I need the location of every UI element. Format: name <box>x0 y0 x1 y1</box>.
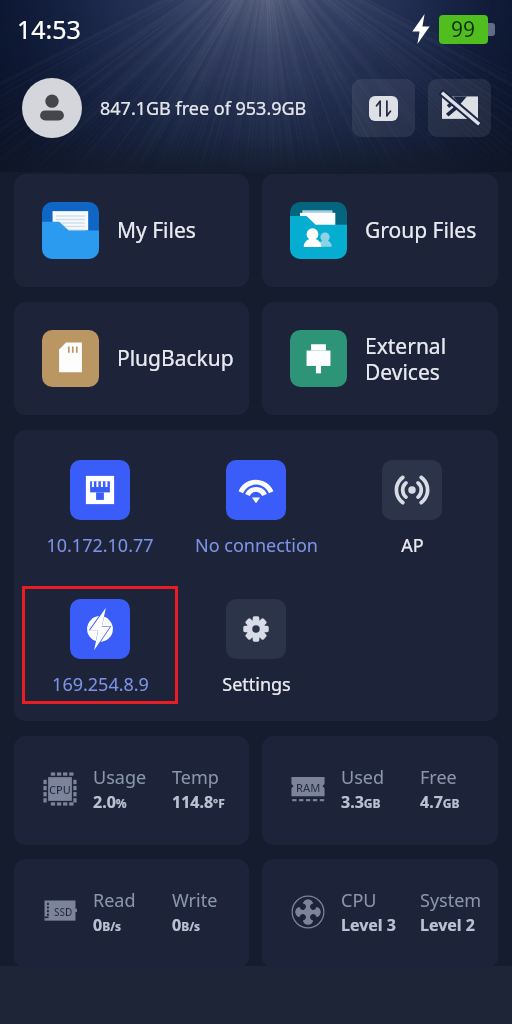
button[interactable]: 169.254.8.9 <box>22 599 178 697</box>
staticText: CPU <box>49 782 71 797</box>
staticText: Level 3 <box>341 914 396 936</box>
staticText: PlugBackup <box>117 344 234 373</box>
staticText: 3.3GB <box>341 791 381 813</box>
staticText: 169.254.8.9 <box>52 672 149 697</box>
button[interactable]: SSD <box>14 859 249 968</box>
staticText: Level 2 <box>420 914 475 936</box>
staticText: RAM <box>296 780 321 795</box>
staticText: Free <box>420 765 457 790</box>
staticText: SSD <box>54 905 73 919</box>
staticText: Temp <box>172 765 219 790</box>
button[interactable]: CPU <box>14 736 249 845</box>
staticText: 114.8°F <box>172 791 225 813</box>
staticText: Usage <box>93 765 147 790</box>
button[interactable]: Profile <box>22 78 82 138</box>
button[interactable]: Settings <box>178 599 334 697</box>
button[interactable]: Mute <box>428 79 491 137</box>
staticText: Write <box>172 888 218 913</box>
staticText: 4.7GB <box>420 791 460 813</box>
button[interactable]: PlugBackup <box>14 302 249 415</box>
button[interactable]: External Devices <box>262 302 498 415</box>
staticText: 0B/s <box>172 914 201 936</box>
staticText: 0B/s <box>93 914 122 936</box>
staticText: 10.172.10.77 <box>46 533 154 558</box>
staticText: External Devices <box>365 332 447 386</box>
staticText: No connection <box>195 533 318 558</box>
button[interactable]: Transfer <box>352 79 415 137</box>
button[interactable]: AP <box>334 460 490 558</box>
staticText: AP <box>401 533 424 558</box>
staticText: Settings <box>222 672 291 697</box>
staticText: Used <box>341 765 385 790</box>
button[interactable]: CPU <box>262 859 498 968</box>
staticText: My Files <box>117 216 196 245</box>
button[interactable]: 10.172.10.77 <box>22 460 178 558</box>
button[interactable]: No connection <box>178 460 334 558</box>
staticText: Read <box>93 888 136 913</box>
button[interactable]: My Files <box>14 174 249 287</box>
staticText: 99 <box>451 15 476 44</box>
button[interactable]: RAM <box>262 736 498 845</box>
staticText: CPU <box>341 888 377 913</box>
staticText: 847.1GB free of 953.9GB <box>100 96 307 121</box>
staticText: System <box>420 888 482 913</box>
staticText: 14:53 <box>17 12 81 46</box>
button[interactable]: Group Files <box>262 174 498 287</box>
staticText: Group Files <box>365 216 477 245</box>
staticText: 2.0% <box>93 791 127 813</box>
